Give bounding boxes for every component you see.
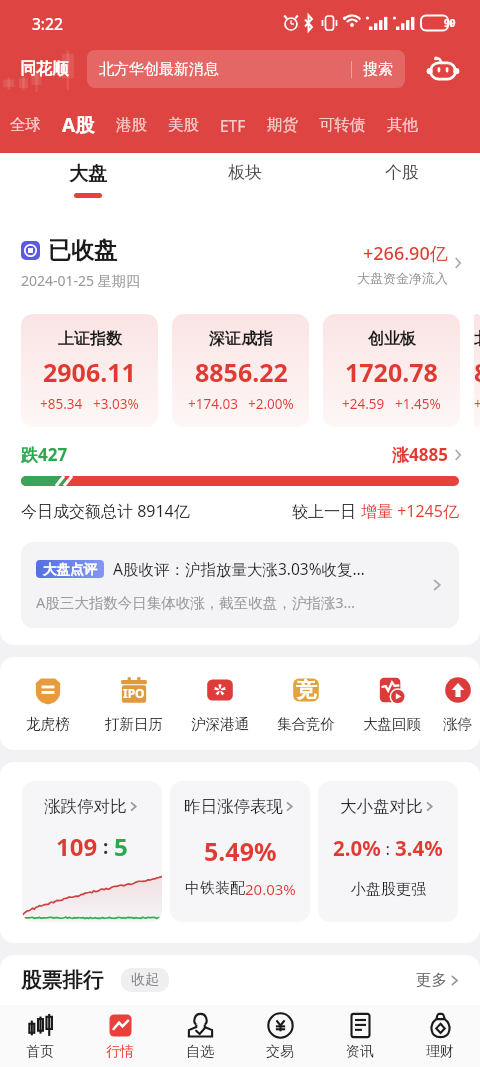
staticText: 收起: [131, 971, 159, 989]
staticText: 1720.78: [345, 355, 438, 389]
staticText: 期货: [267, 115, 298, 135]
staticText: 可转债: [319, 115, 366, 135]
staticText: +1.0: [474, 395, 480, 413]
staticText: 集合竞价: [277, 715, 335, 733]
staticText: 5.49%: [204, 834, 277, 868]
staticText: 竞: [296, 677, 317, 703]
staticText: 5: [114, 830, 128, 863]
button[interactable]: A股: [62, 112, 95, 138]
button[interactable]: AI assistant: [405, 50, 480, 88]
button[interactable]: 可转债: [319, 115, 366, 135]
button[interactable]: 交易: [240, 1005, 320, 1067]
staticText: 大盘回顾: [363, 715, 421, 733]
staticText: 美股: [168, 115, 199, 135]
staticText: 跌427: [21, 443, 68, 466]
staticText: 已收盘: [48, 236, 117, 265]
button[interactable]: ETF: [220, 115, 246, 136]
staticText: 理财: [426, 1043, 454, 1061]
button[interactable]: 涨停: [435, 674, 480, 733]
button[interactable]: 大小盘对比: [318, 781, 458, 922]
staticText: ETF: [220, 115, 246, 136]
staticText: 个股: [385, 162, 419, 183]
staticText: 更多: [416, 970, 447, 990]
button[interactable]: 资讯: [320, 1005, 400, 1067]
staticText: +266.90亿: [363, 241, 448, 266]
staticText: 港股: [116, 115, 147, 135]
staticText: 3:22: [32, 13, 63, 34]
button[interactable]: IPO: [91, 674, 177, 733]
staticText: +24.59: [342, 395, 385, 413]
button[interactable]: 已收盘: [21, 236, 464, 290]
staticText: 搜索: [363, 60, 393, 79]
button[interactable]: 创业板: [323, 314, 460, 427]
button[interactable]: 上证指数: [21, 314, 158, 427]
button[interactable]: 北方华创最新消息: [87, 50, 405, 88]
staticText: +174.03: [188, 395, 238, 413]
button[interactable]: 昨日涨停表现: [170, 781, 310, 922]
staticText: 北证50: [474, 329, 480, 349]
staticText: 交易: [266, 1043, 294, 1061]
button[interactable]: 自选: [160, 1005, 240, 1067]
staticText: 行情: [106, 1043, 134, 1061]
staticText: +2.00%: [248, 395, 294, 413]
staticText: 深证成指: [209, 329, 273, 349]
staticText: 涨停: [443, 715, 472, 733]
staticText: +3.03%: [93, 395, 139, 413]
button[interactable]: 收起: [121, 968, 169, 992]
button[interactable]: 龙虎榜: [5, 674, 91, 733]
staticText: 龙虎榜: [26, 715, 70, 733]
staticText: IPO: [123, 685, 145, 701]
staticText: 打新日历: [105, 715, 163, 733]
staticText: 800.0: [474, 355, 480, 389]
staticText: 大盘资金净流入: [357, 270, 448, 286]
staticText: 小盘股更强: [351, 880, 426, 899]
button[interactable]: 沪深港通: [177, 674, 263, 733]
staticText: 创业板: [368, 329, 416, 349]
staticText: 大盘点评: [43, 561, 97, 578]
button[interactable]: 期货: [267, 115, 298, 135]
button[interactable]: 美股: [168, 115, 199, 135]
staticText: 今日成交额总计 8914亿: [21, 500, 190, 522]
staticText: 资讯: [346, 1043, 374, 1061]
staticText: :: [98, 834, 114, 860]
staticText: 3.4%: [395, 834, 443, 862]
button[interactable]: 大盘点评: [21, 542, 459, 628]
button[interactable]: 涨跌停对比: [22, 781, 162, 922]
button[interactable]: 深证成指: [172, 314, 309, 427]
button[interactable]: 理财: [400, 1005, 480, 1067]
button[interactable]: 港股: [116, 115, 147, 135]
button[interactable]: 大盘回顾: [349, 674, 435, 733]
button[interactable]: 全球: [10, 115, 41, 135]
button[interactable]: 行情: [80, 1005, 160, 1067]
staticText: 涨4885: [392, 443, 448, 466]
staticText: 上证指数: [58, 329, 122, 349]
staticText: 首页: [26, 1043, 54, 1061]
staticText: 其他: [387, 115, 418, 135]
staticText: 昨日涨停表现: [184, 796, 283, 817]
button[interactable]: 首页: [0, 1005, 80, 1067]
staticText: +1.45%: [395, 395, 441, 413]
staticText: A股: [62, 112, 95, 138]
staticText: A股三大指数今日集体收涨，截至收盘，沪指涨3…: [36, 592, 356, 612]
staticText: 2906.11: [43, 355, 136, 389]
staticText: 板块: [228, 162, 262, 183]
staticText: 自选: [186, 1043, 214, 1061]
staticText: 2024-01-25 星期四: [21, 271, 140, 290]
staticText: A股收评：沪指放量大涨3.03%收复…: [113, 558, 365, 579]
staticText: 全球: [10, 115, 41, 135]
button[interactable]: 更多: [416, 970, 462, 990]
staticText: 股票排行: [21, 967, 103, 993]
staticText: 大小盘对比: [340, 796, 423, 817]
button[interactable]: 北证50: [474, 314, 480, 427]
staticText: 2.0%: [333, 834, 381, 862]
button[interactable]: 板块: [166, 153, 323, 207]
button[interactable]: 跌427: [21, 443, 464, 466]
button[interactable]: 大盘: [9, 153, 166, 207]
button[interactable]: 个股: [323, 153, 480, 207]
button[interactable]: 竞: [263, 674, 349, 733]
staticText: +85.34: [40, 395, 83, 413]
button[interactable]: 其他: [387, 115, 418, 135]
staticText: 20.03%: [245, 879, 296, 899]
staticText: 99: [444, 16, 456, 30]
staticText: 同花顺: [20, 59, 68, 79]
